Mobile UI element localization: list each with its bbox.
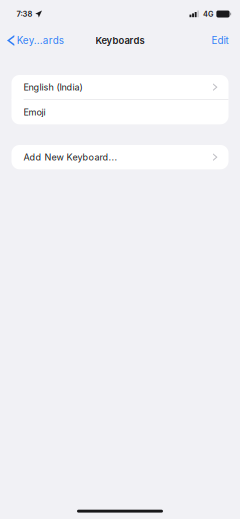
button[interactable]: Add New Keyboard... [11,145,228,169]
staticText: Emoji [23,107,45,118]
staticText: English (India) [23,82,82,93]
staticText: Keyboards [95,35,144,46]
staticText: 4G [203,10,213,18]
button[interactable]: Edit [200,28,240,53]
staticText: 7:38 [16,9,32,19]
button[interactable]: Key...ards [0,28,71,53]
button[interactable]: Emoji [11,100,228,124]
staticText: Edit [211,34,228,46]
staticText: Add New Keyboard... [23,152,117,163]
button[interactable]: English (India) [11,75,228,99]
staticText: Key...ards [17,34,64,46]
